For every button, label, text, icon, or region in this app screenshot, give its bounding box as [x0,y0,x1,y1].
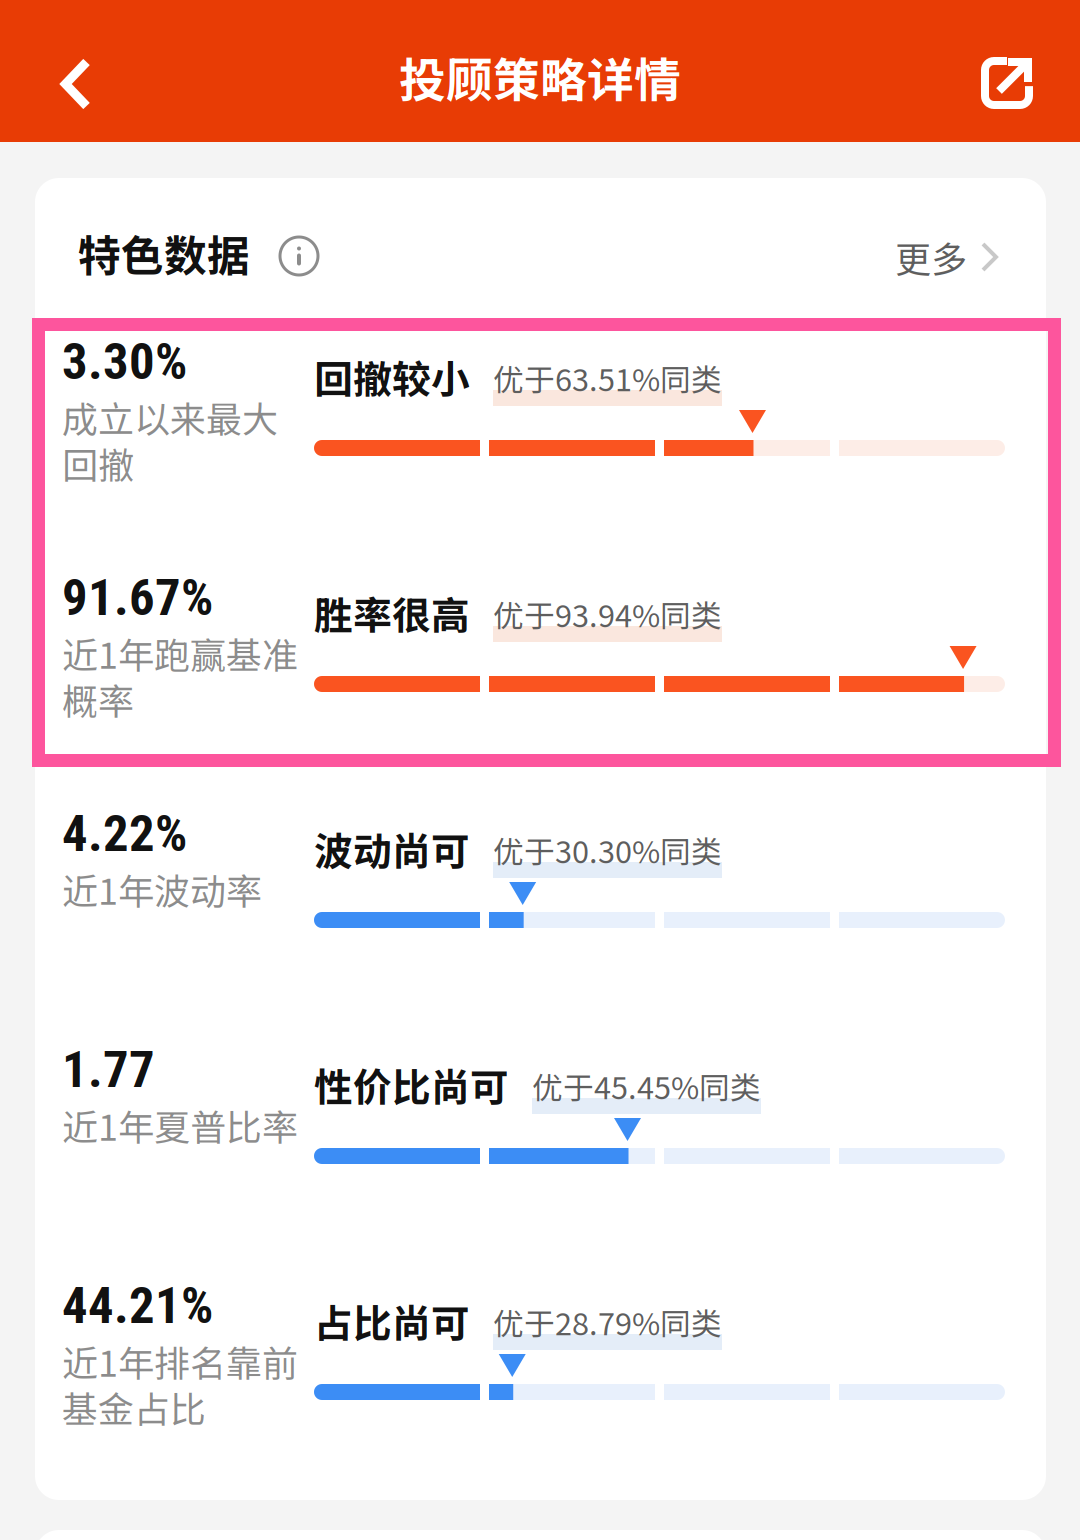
staticText: 3.30% [62,332,187,391]
button[interactable]: Share [942,12,1072,154]
staticText: 投顾策略详情 [399,43,681,111]
staticText: 成立以来最大 [62,391,278,443]
staticText: 波动尚可 [314,821,470,877]
staticText: 概率 [62,673,134,725]
staticText: 占比尚可 [314,1293,470,1349]
button[interactable]: About featured data [263,220,335,292]
staticText: 胜率很高 [314,585,470,641]
staticText: 4.22% [62,804,187,863]
button[interactable]: Back [11,13,141,155]
staticText: 基金占比 [62,1381,206,1433]
staticText: 更多 [895,231,967,283]
staticText: 回撤较小 [314,349,470,405]
staticText: 优于30.30%同类 [493,828,722,872]
staticText: 44.21% [62,1276,213,1335]
staticText: 回撤 [62,437,134,489]
staticText: 优于63.51%同类 [493,356,722,400]
staticText: 91.67% [62,568,213,627]
staticText: 特色数据 [78,222,250,284]
staticText: 近1年夏普比率 [62,1099,298,1151]
staticText: 优于93.94%同类 [493,592,722,636]
staticText: 优于28.79%同类 [493,1300,722,1344]
staticText: 近1年跑赢基准 [62,627,298,679]
staticText: 近1年排名靠前 [62,1335,298,1387]
button[interactable]: 更多 [808,217,998,297]
staticText: 1.77 [62,1040,155,1099]
staticText: 优于45.45%同类 [532,1064,761,1108]
staticText: 性价比尚可 [314,1057,509,1113]
staticText: 近1年波动率 [62,863,262,915]
